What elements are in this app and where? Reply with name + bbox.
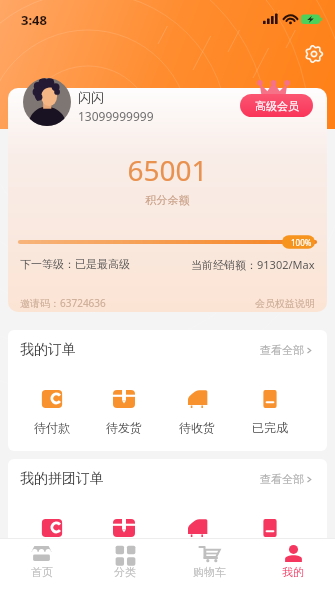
button[interactable]: 首页 [0,539,83,601]
button[interactable]: 分类 [83,539,167,601]
button[interactable]: 待发货 [88,499,160,553]
staticText: 高级会员 [255,99,299,113]
button[interactable]: 待收货 [160,370,233,451]
staticText: 积分余额 [8,193,327,207]
button[interactable]: 待付款 [16,499,88,553]
staticText: 待收货 [179,420,215,435]
other: 待收货 [186,390,208,408]
other: 待发货 [113,519,135,537]
staticText: 待发货 [106,420,142,435]
staticText: 已完成 [252,420,288,435]
other: 待付款 [41,519,63,537]
staticText: 购物车 [193,565,226,579]
staticText: 13099999999 [78,108,154,124]
button[interactable]: 查看全部 [260,472,315,486]
staticText: 下一等级：已是最高级 [20,257,130,271]
button[interactable]: 已完成 [233,370,306,451]
button[interactable]: 待付款 [16,370,88,451]
other: 已完成 [259,390,281,408]
staticText: 查看全部 [260,472,304,486]
button[interactable]: Settings [300,40,328,68]
staticText: 我的拼团订单 [20,470,104,488]
staticText: 首页 [31,565,53,579]
staticText: 我的订单 [20,341,76,359]
staticText: 邀请码：63724636 [20,296,106,310]
staticText: 65001 [8,151,327,189]
button[interactable]: 高级会员 [240,94,313,117]
other: 待发货 [113,390,135,408]
staticText: 当前经销额：91302/Max [191,257,315,272]
button[interactable]: 我的 [251,539,335,601]
staticText: 闪闪 [78,89,104,105]
button[interactable]: Avatar [23,78,71,126]
staticText: 分类 [114,565,136,579]
other: 待收货 [186,519,208,537]
button[interactable]: 会员权益说明 [255,297,315,310]
staticText: 待付款 [34,420,70,435]
button[interactable]: 待收货 [160,499,233,553]
button[interactable]: 查看全部 [260,343,315,357]
staticText: 100% [291,237,312,248]
other: 待付款 [41,390,63,408]
button[interactable]: 已完成 [233,499,306,553]
button[interactable]: 购物车 [167,539,251,601]
staticText: 3:48 [21,11,47,29]
button[interactable]: 待发货 [88,370,160,451]
staticText: 我的 [282,565,304,579]
staticText: 查看全部 [260,343,304,357]
other: 已完成 [259,519,281,537]
